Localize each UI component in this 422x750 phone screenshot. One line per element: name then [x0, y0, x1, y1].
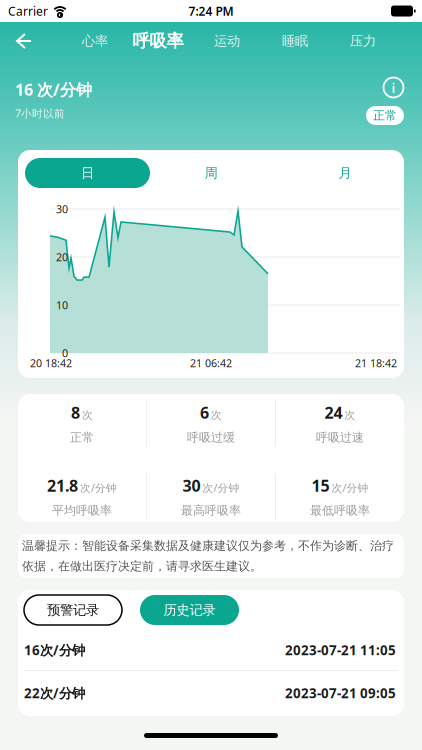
staticText: 次: [344, 409, 355, 422]
staticText: 8: [71, 402, 80, 423]
staticText: 历史记录: [163, 602, 215, 618]
staticText: 7小时以前: [15, 106, 65, 120]
staticText: Carrier: [8, 3, 48, 19]
staticText: 最高呼吸率: [181, 503, 241, 518]
button[interactable]: 呼吸率: [130, 22, 186, 60]
staticText: 22次/分钟: [24, 684, 85, 702]
staticText: 7:24 PM: [188, 3, 233, 19]
button[interactable]: 预警记录: [24, 595, 122, 625]
staticText: 次: [82, 409, 93, 422]
button[interactable]: i: [383, 77, 404, 98]
staticText: 呼吸过速: [316, 430, 364, 445]
button[interactable]: 月: [315, 158, 375, 188]
staticText: 周: [204, 165, 217, 181]
staticText: 温馨提示：智能设备采集数据及健康建议仅为参考，不作为诊断、治疗: [22, 538, 394, 553]
staticText: 运动: [214, 33, 240, 49]
staticText: 次/分钟: [80, 481, 117, 495]
staticText: 次: [211, 409, 222, 422]
staticText: 10: [56, 298, 68, 312]
button[interactable]: [0, 22, 60, 60]
staticText: 21.8: [47, 475, 78, 496]
staticText: 20: [56, 250, 68, 264]
staticText: 呼吸过缓: [187, 430, 235, 445]
staticText: i: [391, 79, 395, 96]
button[interactable]: 睡眠: [268, 22, 322, 60]
staticText: 次/分钟: [331, 481, 368, 495]
staticText: 正常: [70, 430, 94, 445]
staticText: 0: [62, 346, 68, 360]
button[interactable]: 运动: [186, 22, 268, 60]
staticText: 16次/分钟: [24, 641, 85, 659]
staticText: 压力: [350, 33, 376, 49]
staticText: 2023-07-21 09:05: [285, 684, 396, 702]
staticText: 依据，在做出医疗决定前，请寻求医生建议。: [22, 559, 262, 574]
staticText: 次/分钟: [202, 481, 239, 495]
staticText: 20 18:42: [30, 356, 72, 370]
button[interactable]: 心率: [60, 22, 130, 60]
button[interactable]: 历史记录: [140, 595, 239, 625]
staticText: 日: [81, 165, 94, 181]
button[interactable]: 压力: [322, 22, 404, 60]
staticText: 30: [182, 475, 200, 496]
button[interactable]: 周: [181, 158, 241, 188]
staticText: 心率: [82, 33, 108, 49]
staticText: 预警记录: [47, 602, 99, 618]
staticText: 正常: [373, 108, 397, 123]
staticText: 24: [324, 402, 342, 423]
staticText: 月: [338, 165, 351, 181]
staticText: 6: [200, 402, 209, 423]
staticText: 平均呼吸率: [52, 503, 112, 518]
staticText: 呼吸率: [132, 30, 183, 52]
staticText: 2023-07-21 11:05: [285, 641, 396, 659]
staticText: 21 06:42: [190, 356, 232, 370]
staticText: 16 次/分钟: [15, 79, 92, 100]
button[interactable]: 正常: [366, 106, 404, 125]
staticText: 30: [56, 202, 68, 216]
staticText: 睡眠: [282, 33, 308, 49]
staticText: 21 18:42: [355, 356, 397, 370]
button[interactable]: 日: [25, 158, 150, 188]
button[interactable]: 16次/分钟: [18, 630, 404, 670]
staticText: 15: [311, 475, 329, 496]
staticText: 最低呼吸率: [310, 503, 370, 518]
button[interactable]: 22次/分钟: [18, 673, 404, 713]
